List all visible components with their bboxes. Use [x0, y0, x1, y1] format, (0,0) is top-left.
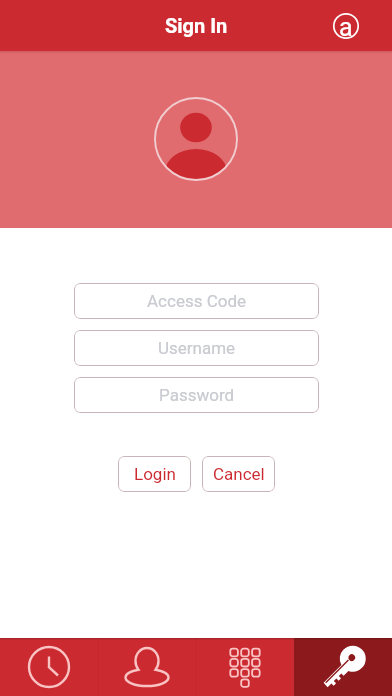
button[interactable]: Cancel	[202, 456, 275, 492]
button[interactable]: Contacts	[98, 638, 196, 696]
staticText: Cancel	[213, 464, 265, 484]
button[interactable]: About	[331, 11, 361, 41]
staticText: Sign In	[165, 14, 228, 37]
staticText: Login	[134, 464, 176, 484]
button[interactable]: Recent	[0, 638, 98, 696]
staticText: Password	[159, 385, 235, 405]
button[interactable]: Login	[118, 456, 191, 492]
button[interactable]: Keypad	[196, 638, 294, 696]
button[interactable]: Sign In	[294, 638, 392, 696]
button[interactable]: Username	[74, 330, 319, 366]
button[interactable]: Password	[74, 377, 319, 413]
staticText: a	[339, 13, 353, 41]
staticText: Access Code	[147, 291, 247, 311]
button[interactable]: Access Code	[74, 283, 319, 319]
staticText: Username	[158, 338, 236, 358]
